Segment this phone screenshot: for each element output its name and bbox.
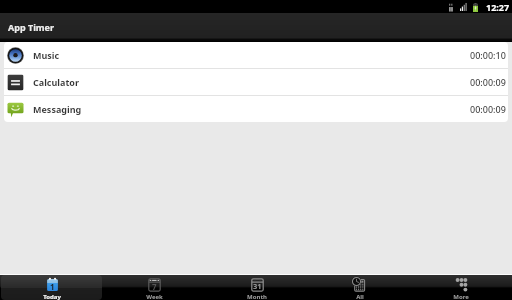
button[interactable]: Music (4, 42, 508, 68)
button[interactable]: More (410, 275, 512, 300)
staticText: Music (33, 49, 60, 61)
staticText: All (356, 293, 364, 300)
button[interactable]: Today (1, 275, 102, 300)
staticText: 00:00:10 (470, 49, 506, 61)
button[interactable]: Week (103, 275, 206, 300)
staticText: Calculator (33, 76, 79, 88)
staticText: Month (247, 293, 267, 300)
button[interactable]: Month (206, 275, 308, 300)
staticText: 1 (50, 281, 55, 292)
staticText: 31 (253, 281, 262, 291)
staticText: 00:00:09 (470, 103, 506, 115)
staticText: Today (43, 293, 61, 300)
button[interactable]: All (308, 275, 410, 300)
staticText: Messaging (33, 103, 82, 115)
staticText: 12:27 (486, 1, 510, 13)
staticText: More (453, 293, 469, 300)
button[interactable]: Calculator (4, 69, 508, 95)
button[interactable]: Messaging (4, 96, 508, 122)
staticText: 7 (152, 281, 157, 292)
staticText: Week (146, 293, 163, 300)
staticText: 00:00:09 (470, 76, 506, 88)
staticText: App Timer (8, 21, 54, 33)
